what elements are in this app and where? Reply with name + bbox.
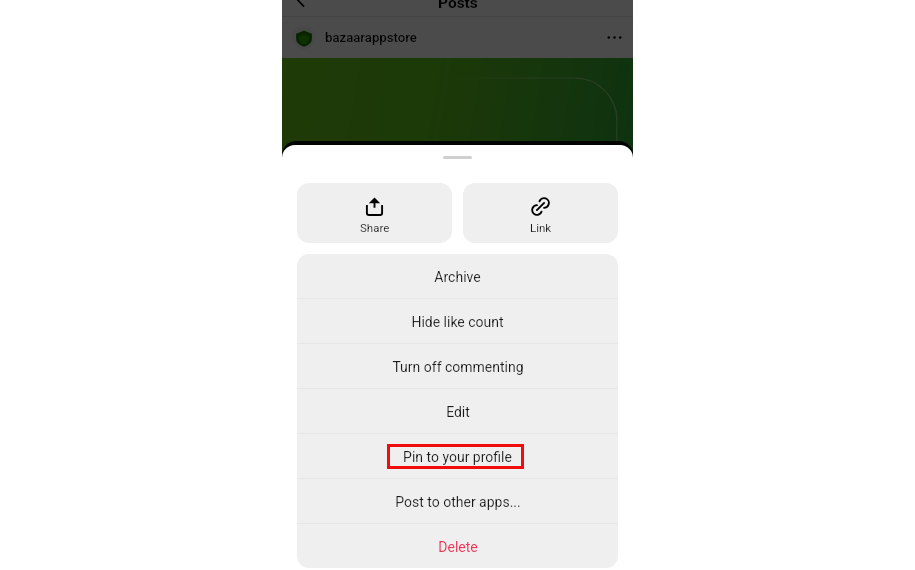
staticText: Pin to your profile	[403, 449, 512, 465]
button[interactable]: Share	[297, 183, 452, 243]
staticText: Edit	[446, 404, 470, 420]
staticText: Posts	[438, 0, 478, 10]
button[interactable]: Edit	[297, 389, 618, 433]
staticText: Share	[360, 221, 390, 234]
staticText: Hide like count	[411, 314, 504, 330]
staticText: bazaarappstore	[325, 30, 417, 45]
button[interactable]: Link	[463, 183, 618, 243]
button[interactable]: Back	[293, 0, 309, 8]
button[interactable]: Pin to your profile	[297, 434, 618, 478]
staticText: Archive	[434, 269, 481, 285]
staticText: Turn off commenting	[392, 359, 524, 375]
staticText: Link	[530, 221, 552, 234]
button[interactable]: More options	[607, 30, 622, 45]
staticText: Post to other apps...	[395, 494, 521, 510]
staticText: Delete	[438, 539, 478, 555]
button[interactable]: Hide like count	[297, 299, 618, 343]
button[interactable]: Turn off commenting	[297, 344, 618, 388]
button[interactable]: Post to other apps...	[297, 479, 618, 523]
button[interactable]: Delete	[297, 524, 618, 568]
button[interactable]: Archive	[297, 254, 618, 298]
